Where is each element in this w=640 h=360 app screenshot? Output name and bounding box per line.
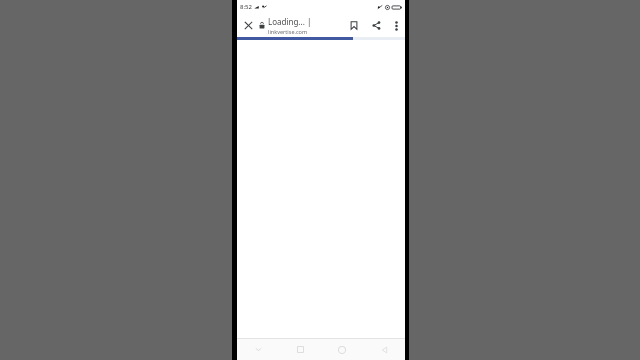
button[interactable]: Loading... | Linkvert... bbox=[259, 14, 342, 37]
button[interactable]: Recent apps bbox=[279, 339, 321, 360]
button[interactable]: Home bbox=[321, 339, 363, 360]
staticText: 8:52 bbox=[240, 3, 252, 11]
button[interactable]: Share bbox=[365, 14, 388, 37]
button[interactable]: Close bbox=[237, 14, 259, 37]
button[interactable]: More options bbox=[388, 14, 405, 37]
button[interactable]: Bookmark bbox=[342, 14, 365, 37]
staticText: linkvertise.com bbox=[268, 28, 308, 35]
staticText: Loading... | Linkvert... bbox=[268, 16, 342, 27]
